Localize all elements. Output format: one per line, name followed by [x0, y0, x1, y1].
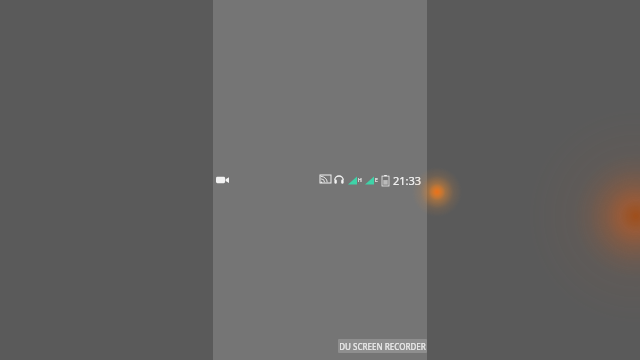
- staticText: E: [375, 177, 378, 184]
- staticText: DU SCREEN RECORDER: [339, 341, 426, 352]
- other: Cast: [320, 175, 331, 185]
- other: Battery: [382, 175, 389, 186]
- staticText: 21:33: [393, 173, 422, 188]
- other: Headphones connected: [334, 175, 344, 185]
- button[interactable]: DU SCREEN RECORDER: [338, 339, 427, 353]
- staticText: H: [358, 177, 362, 184]
- other: Screen recording active: [216, 175, 229, 185]
- button[interactable]: Touch indicator: [412, 167, 462, 217]
